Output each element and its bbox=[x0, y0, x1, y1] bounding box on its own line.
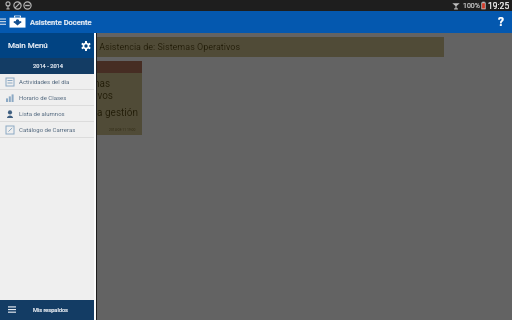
button[interactable]: Help bbox=[490, 11, 512, 33]
staticText: 100% bbox=[463, 2, 480, 10]
staticText: 2014-08-11 19:00 bbox=[109, 128, 136, 132]
button[interactable]: Asignatura Sistemas bbox=[12, 61, 142, 135]
staticText: Asistente Docente bbox=[30, 18, 92, 27]
staticText: Semestre: Operativos bbox=[18, 90, 114, 102]
button[interactable]: Open navigation drawer bbox=[0, 11, 8, 33]
button[interactable]: Main Menú bbox=[0, 33, 96, 58]
staticText: Clases para Tomar Asistencia de: Sistema… bbox=[22, 42, 241, 53]
staticText: Actividades del día bbox=[19, 78, 70, 85]
staticText: 2014 - 2014 bbox=[33, 63, 63, 70]
button[interactable]: Mis respaldos bbox=[0, 300, 96, 320]
staticText: Asignatura Sistemas bbox=[18, 78, 111, 90]
staticText: Catálogo de Carreras bbox=[19, 126, 76, 133]
button[interactable]: Settings bbox=[76, 33, 96, 58]
staticText: Aula: Lab de c para gestión bbox=[18, 107, 138, 119]
staticText: Horario de Clases bbox=[19, 94, 67, 101]
button[interactable]: Horario de Clases bbox=[0, 90, 96, 105]
staticText: 19:25 bbox=[488, 1, 510, 11]
button[interactable]: Lista de alumnos bbox=[0, 106, 96, 121]
staticText: Main Menú bbox=[8, 41, 48, 50]
button[interactable]: Catálogo de Carreras bbox=[0, 122, 96, 137]
staticText: Lista de alumnos bbox=[19, 110, 65, 117]
staticText: ? bbox=[498, 15, 504, 29]
button[interactable]: Actividades del día bbox=[0, 74, 96, 89]
staticText: Mis respaldos bbox=[33, 307, 68, 314]
